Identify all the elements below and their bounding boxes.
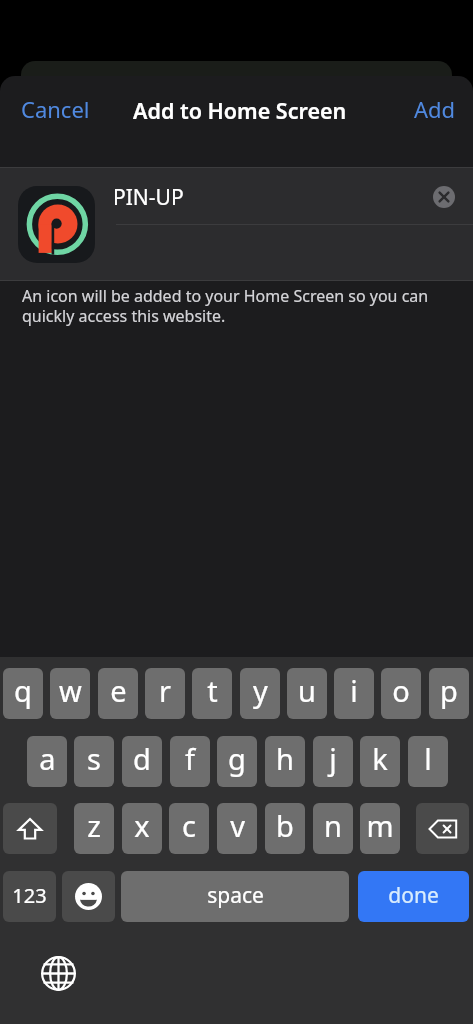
staticText: Add to Home Screen xyxy=(133,96,347,125)
button[interactable]: a xyxy=(27,736,67,787)
button[interactable]: Add xyxy=(397,84,473,134)
button[interactable]: e xyxy=(98,668,138,719)
staticText: c xyxy=(182,806,196,845)
staticText: s xyxy=(87,739,101,778)
button[interactable]: q xyxy=(3,668,43,719)
button[interactable]: g xyxy=(217,736,257,787)
button[interactable]: o xyxy=(381,668,421,719)
staticText: k xyxy=(372,739,388,778)
staticText: An icon will be added to your Home Scree… xyxy=(22,285,443,326)
button[interactable]: x xyxy=(122,803,162,854)
staticText: u xyxy=(298,671,316,710)
staticText: i xyxy=(350,671,358,710)
button[interactable]: d xyxy=(122,736,162,787)
button[interactable]: Emoji xyxy=(62,871,115,922)
staticText: e xyxy=(110,671,127,710)
button[interactable]: i xyxy=(334,668,374,719)
button[interactable]: f xyxy=(170,736,210,787)
staticText: t xyxy=(207,671,218,710)
button[interactable]: l xyxy=(408,736,448,787)
staticText: Cancel xyxy=(21,94,90,124)
staticText: Add xyxy=(414,94,456,124)
staticText: d xyxy=(133,739,151,778)
staticText: w xyxy=(59,671,82,710)
staticText: g xyxy=(228,739,246,778)
button[interactable]: space xyxy=(121,871,349,922)
button[interactable]: k xyxy=(360,736,400,787)
button[interactable]: s xyxy=(74,736,114,787)
button[interactable]: Clear text xyxy=(428,181,460,213)
staticText: y xyxy=(253,671,268,710)
button[interactable]: b xyxy=(265,803,305,854)
staticText: p xyxy=(440,671,458,710)
button[interactable]: done xyxy=(358,871,469,922)
button[interactable]: 123 xyxy=(3,871,56,922)
staticText: 123 xyxy=(12,882,47,909)
staticText: q xyxy=(14,671,32,710)
staticText: j xyxy=(329,739,337,778)
button[interactable]: m xyxy=(360,803,400,854)
staticText: v xyxy=(230,806,245,845)
staticText: x xyxy=(134,806,150,845)
button[interactable]: w xyxy=(50,668,90,719)
button[interactable]: z xyxy=(74,803,114,854)
staticText: PIN-UP xyxy=(113,183,184,212)
staticText: m xyxy=(366,806,394,845)
staticText: a xyxy=(39,739,56,778)
button[interactable]: Shift xyxy=(3,803,57,854)
button[interactable]: Cancel xyxy=(0,84,111,134)
button[interactable]: u xyxy=(287,668,327,719)
staticText: r xyxy=(159,671,171,710)
staticText: space xyxy=(207,881,264,910)
button[interactable]: p xyxy=(429,668,469,719)
button[interactable]: y xyxy=(240,668,280,719)
staticText: o xyxy=(392,671,410,710)
staticText: h xyxy=(276,739,294,778)
staticText: l xyxy=(424,739,432,778)
button[interactable]: Change keyboard language xyxy=(36,951,80,995)
button[interactable]: n xyxy=(313,803,353,854)
button[interactable]: t xyxy=(192,668,232,719)
button[interactable]: c xyxy=(169,803,209,854)
button[interactable]: h xyxy=(265,736,305,787)
staticText: n xyxy=(324,806,342,845)
staticText: z xyxy=(87,806,101,845)
staticText: done xyxy=(388,881,439,910)
button[interactable]: PIN-UP icon xyxy=(18,186,95,263)
button[interactable]: j xyxy=(313,736,353,787)
button[interactable]: Backspace xyxy=(416,803,469,854)
staticText: b xyxy=(276,806,294,845)
button[interactable]: r xyxy=(145,668,185,719)
button[interactable]: v xyxy=(217,803,257,854)
staticText: f xyxy=(185,739,195,778)
